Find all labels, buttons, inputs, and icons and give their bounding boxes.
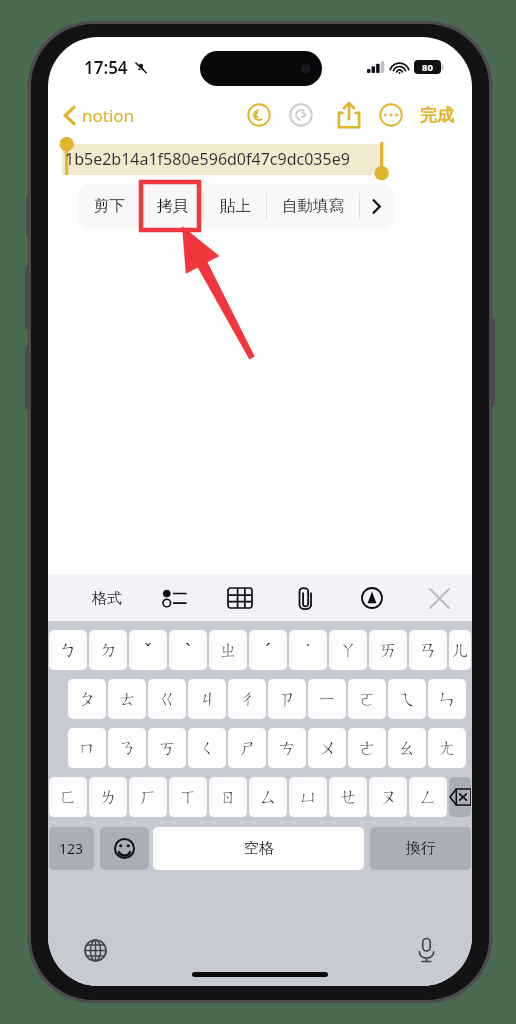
button[interactable]: ㄩ — [289, 777, 327, 817]
staticText: ㄗ — [278, 688, 297, 711]
staticText: ㄖ — [219, 786, 238, 809]
button[interactable]: ㄠ — [388, 728, 426, 768]
staticText: ㄏ — [139, 786, 158, 809]
button[interactable]: ˙ — [289, 630, 327, 670]
staticText: ㄛ — [358, 688, 377, 711]
button[interactable]: ㄛ — [348, 679, 386, 719]
staticText: ㄧ — [318, 688, 337, 711]
staticText: ˋ — [185, 638, 191, 663]
staticText: 剪下 — [94, 196, 125, 216]
button[interactable]: ㄒ — [169, 777, 207, 817]
button[interactable]: notion — [56, 100, 143, 131]
staticText: notion — [82, 104, 135, 127]
button[interactable]: ㄉ — [89, 630, 127, 670]
staticText: ㄟ — [398, 688, 417, 711]
button[interactable]: 自動填寫 — [267, 184, 359, 228]
button[interactable]: Draw — [350, 576, 394, 620]
button[interactable]: Emoji — [100, 827, 149, 870]
button[interactable]: 完成 — [412, 99, 462, 132]
button[interactable]: ㄜ — [348, 728, 386, 768]
button[interactable]: Delete — [449, 777, 471, 817]
staticText: ㄠ — [398, 737, 417, 760]
staticText: ㄞ — [379, 639, 398, 662]
button[interactable]: ㄖ — [209, 777, 247, 817]
button[interactable]: ㄗ — [268, 679, 306, 719]
staticText: ㄓ — [219, 639, 238, 662]
button[interactable]: Table — [218, 576, 262, 620]
staticText: 80 — [422, 61, 433, 74]
button[interactable]: More — [370, 94, 412, 136]
button[interactable]: Checklist — [152, 576, 196, 620]
button[interactable]: ˋ — [169, 630, 207, 670]
button[interactable]: ㄝ — [329, 777, 367, 817]
staticText: ㄇ — [78, 737, 97, 760]
button[interactable]: ㄇ — [68, 728, 106, 768]
staticText: ㄌ — [99, 786, 118, 809]
button[interactable]: ㄥ — [409, 777, 447, 817]
staticText: ㄎ — [158, 737, 177, 760]
button[interactable]: Redo — [280, 94, 322, 136]
button[interactable]: ㄙ — [249, 777, 287, 817]
button[interactable]: 拷貝 — [141, 184, 203, 228]
button[interactable]: ㄤ — [428, 728, 466, 768]
button[interactable]: ㄟ — [388, 679, 426, 719]
button[interactable]: ㄕ — [228, 728, 266, 768]
button[interactable]: ㄧ — [308, 679, 346, 719]
button[interactable]: ㄡ — [369, 777, 407, 817]
button[interactable]: ˇ — [129, 630, 167, 670]
button[interactable]: 空格 — [153, 827, 364, 870]
button[interactable]: ㄐ — [188, 679, 226, 719]
staticText: 自動填寫 — [282, 196, 344, 216]
button[interactable]: ㄣ — [428, 679, 466, 719]
staticText: 123 — [59, 839, 84, 858]
button[interactable]: ㄔ — [228, 679, 266, 719]
staticText: ㄈ — [59, 786, 78, 809]
staticText: ㄑ — [198, 737, 217, 760]
button[interactable]: Share — [328, 94, 370, 136]
button[interactable]: Dictation — [406, 930, 446, 970]
button[interactable]: ㄍ — [148, 679, 186, 719]
staticText: ㄔ — [238, 688, 257, 711]
button[interactable]: More options — [360, 184, 393, 228]
button[interactable]: Attach — [284, 576, 328, 620]
button[interactable]: ㄆ — [68, 679, 106, 719]
staticText: ㄢ — [419, 639, 438, 662]
staticText: ㄣ — [438, 688, 457, 711]
button[interactable]: ㄏ — [129, 777, 167, 817]
staticText: ㄡ — [379, 786, 398, 809]
button[interactable]: ㄎ — [148, 728, 186, 768]
button[interactable]: 貼上 — [204, 184, 266, 228]
button[interactable]: Undo — [238, 94, 280, 136]
staticText: ㄙ — [259, 786, 278, 809]
button[interactable]: ˊ — [249, 630, 287, 670]
button[interactable]: ㄞ — [369, 630, 407, 670]
button[interactable]: ㄘ — [268, 728, 306, 768]
staticText: ㄉ — [99, 639, 118, 662]
staticText: 格式 — [92, 589, 122, 608]
staticText: ㄍ — [158, 688, 177, 711]
button[interactable]: ㄢ — [409, 630, 447, 670]
button[interactable]: 剪下 — [78, 184, 140, 228]
button[interactable]: 123 — [49, 827, 94, 870]
button[interactable]: ㄦ — [449, 630, 471, 670]
button[interactable]: Change keyboard — [75, 930, 115, 970]
button[interactable]: ㄨ — [308, 728, 346, 768]
button[interactable]: ㄋ — [108, 728, 146, 768]
button[interactable]: ㄚ — [329, 630, 367, 670]
staticText: 17:54 — [84, 56, 128, 79]
button[interactable]: ㄌ — [89, 777, 127, 817]
button[interactable]: ㄊ — [108, 679, 146, 719]
button[interactable]: Close keyboard — [416, 575, 462, 621]
staticText: ㄥ — [419, 786, 438, 809]
staticText: ㄤ — [438, 737, 457, 760]
button[interactable]: ㄑ — [188, 728, 226, 768]
button[interactable]: ㄓ — [209, 630, 247, 670]
staticText: ㄕ — [238, 737, 257, 760]
button[interactable]: ㄅ — [49, 630, 87, 670]
staticText: 空格 — [244, 839, 274, 858]
staticText: 拷貝 — [157, 196, 188, 216]
staticText: ˊ — [265, 638, 271, 663]
button[interactable]: ㄈ — [49, 777, 87, 817]
button[interactable]: 格式 — [80, 576, 134, 620]
button[interactable]: 換行 — [370, 827, 471, 870]
